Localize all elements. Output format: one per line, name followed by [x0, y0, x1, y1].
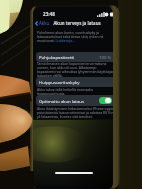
staticText: Tämä ilmaisee akun kapasiteetin verrattu…: [37, 61, 113, 78]
button[interactable]: Puhjukapasiteetti: [36, 52, 113, 62]
staticText: Huippusuorituskyky: [39, 79, 80, 85]
other: Back: [35, 21, 38, 26]
staticText: Optimoitu akun lataus: [39, 98, 85, 104]
button[interactable]: Back: [35, 20, 50, 26]
staticText: Akku: [39, 20, 50, 26]
staticText: 23:48: [43, 11, 55, 17]
button[interactable]: Optimoitu akun lataus: [99, 97, 112, 104]
button[interactable]: Puhelimesi akun kunto, suorituskyky ja l…: [37, 30, 113, 43]
button[interactable]: Optimoitu akun lataus: [36, 95, 113, 106]
staticText: Akku tukee tällä hetkellä normaalia huip…: [37, 87, 113, 96]
button[interactable]: Huippusuorituskyky: [36, 77, 113, 87]
staticText: Akun terveys ja lataus: [53, 20, 101, 26]
staticText: Akun ikääntymisen hidastamiseksi iPhone …: [37, 106, 113, 119]
staticText: Puhjukapasiteetti: [39, 54, 75, 60]
staticText: 100 %: [99, 54, 112, 60]
